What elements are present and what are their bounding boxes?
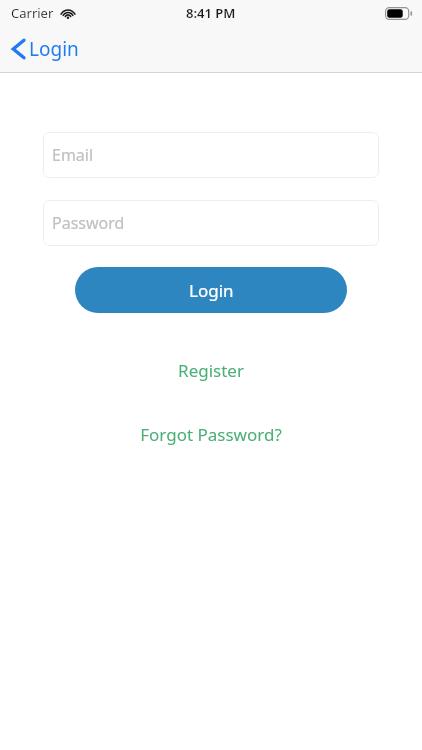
staticText: Email [52,144,94,166]
other: Battery [385,7,412,20]
button[interactable]: Back [8,32,83,66]
other: Back [12,38,25,60]
staticText: Password [52,212,125,234]
button[interactable]: Forgot Password? [124,417,298,452]
button[interactable]: Email [43,132,379,178]
staticText: 8:41 PM [186,4,236,22]
staticText: Register [178,359,244,382]
button[interactable]: Login [75,267,347,313]
other: Wi-Fi [60,7,76,19]
staticText: Login [189,279,234,302]
staticText: Forgot Password? [140,423,282,446]
staticText: Login [29,36,79,62]
button[interactable]: Password [43,200,379,246]
button[interactable]: Register [162,353,260,388]
staticText: Carrier [11,4,54,22]
